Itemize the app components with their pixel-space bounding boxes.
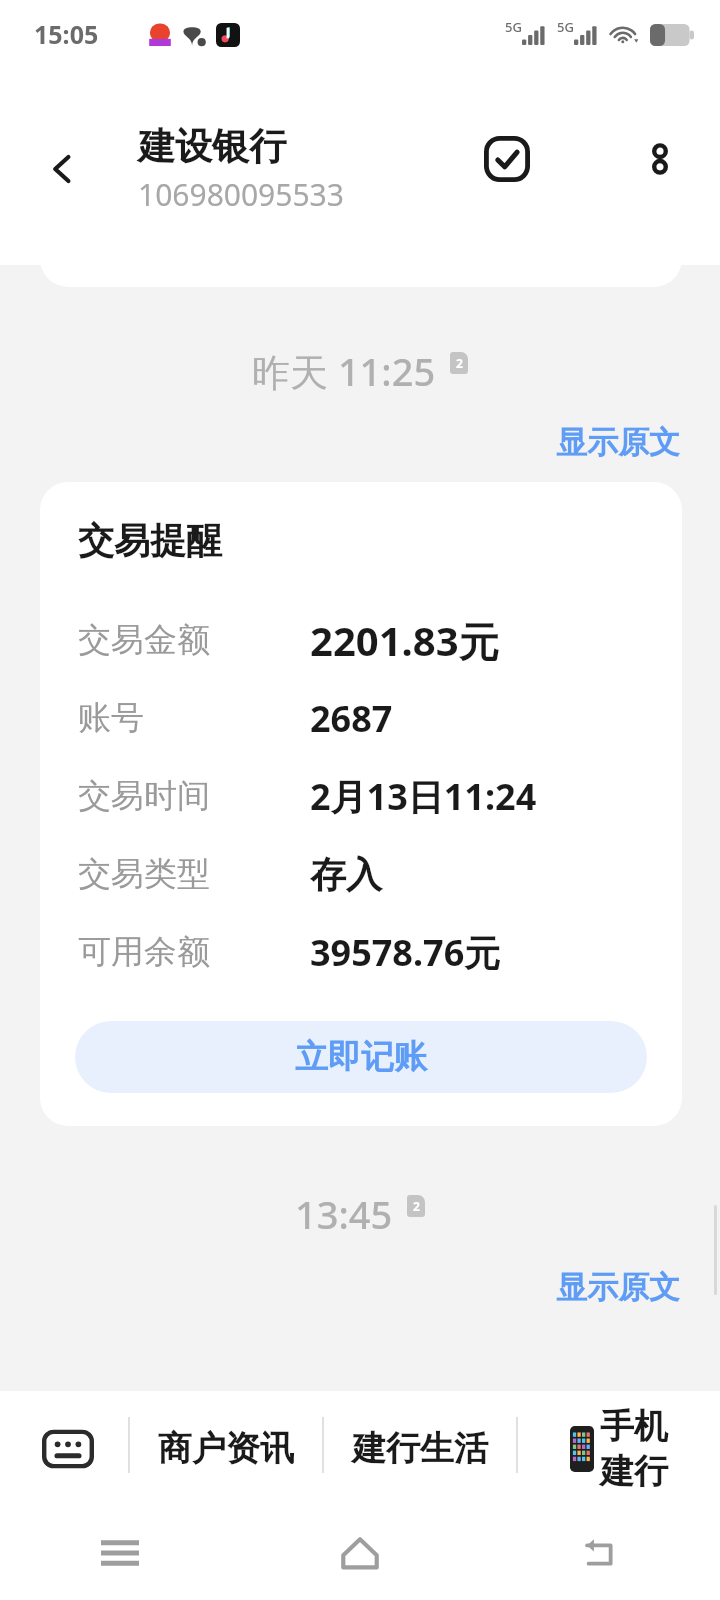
staticText: 交易金额 [78, 619, 210, 661]
button[interactable]: 建行生活 [324, 1391, 516, 1506]
staticText: 2687 [310, 694, 393, 743]
staticText: 显示原文 [556, 1268, 680, 1307]
staticText: 2月13日11:24 [310, 772, 537, 821]
button[interactable]: 交易提醒 [40, 482, 682, 1126]
button[interactable]: Select messages [472, 124, 542, 194]
staticText: 交易提醒 [78, 518, 222, 563]
button[interactable]: Home [240, 1506, 480, 1600]
staticText: 可用余额 [78, 931, 210, 973]
staticText: 2201.83元 [310, 613, 499, 668]
staticText: 建设银行 [138, 123, 286, 170]
staticText: 交易时间 [78, 775, 210, 817]
button[interactable]: 立即记账 [75, 1021, 647, 1093]
staticText: 建行生活 [352, 1427, 488, 1470]
button[interactable]: 手机 建行 [518, 1391, 720, 1506]
button[interactable]: More options [628, 127, 692, 191]
staticText: 账号 [78, 697, 144, 739]
staticText: 手机 建行 [600, 1405, 668, 1493]
staticText: 2 [413, 1198, 420, 1214]
button[interactable]: Back [34, 140, 92, 198]
button[interactable]: Back [480, 1506, 720, 1600]
staticText: 106980095533 [138, 174, 344, 215]
staticText: 13:45 [295, 1188, 393, 1240]
staticText: 2 [456, 355, 463, 371]
staticText: 显示原文 [556, 423, 680, 462]
staticText: 5G [505, 18, 522, 36]
staticText: 立即记账 [295, 1036, 427, 1078]
staticText: 39578.76元 [310, 928, 501, 977]
staticText: 5G [557, 18, 574, 36]
button[interactable]: Recents [0, 1506, 240, 1600]
button[interactable]: Keyboard [30, 1411, 106, 1487]
staticText: 15:05 [34, 17, 99, 51]
button[interactable]: 显示原文 [556, 423, 680, 462]
staticText: 昨天 11:25 [252, 345, 436, 397]
button[interactable]: 显示原文 [556, 1268, 680, 1307]
button[interactable]: 商户资讯 [130, 1391, 322, 1506]
staticText: 商户资讯 [158, 1427, 294, 1470]
staticText: 交易类型 [78, 853, 210, 895]
staticText: 存入 [310, 852, 382, 897]
